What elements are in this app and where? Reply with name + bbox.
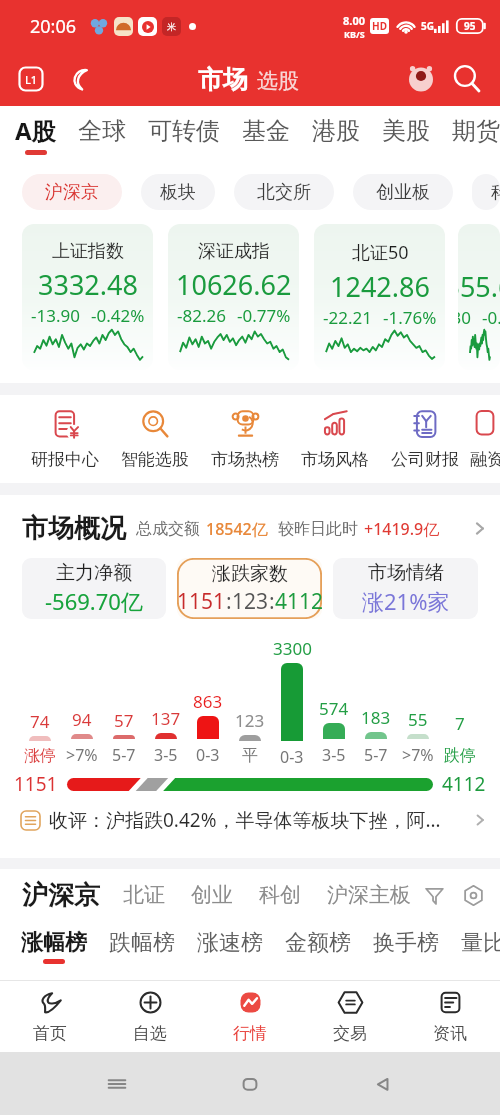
button[interactable]: 公司财报	[380, 408, 470, 470]
staticText: :	[226, 587, 232, 616]
staticText: 574	[319, 697, 349, 720]
button[interactable]: 创业板	[353, 174, 453, 210]
button[interactable]: 跌幅榜	[98, 921, 186, 973]
button[interactable]: 港股	[301, 106, 371, 163]
staticText: 可转债	[148, 116, 220, 146]
button[interactable]: 换手榜	[362, 921, 450, 973]
staticText: 183	[361, 706, 391, 729]
staticText: 港股	[312, 116, 360, 146]
staticText: 18542亿	[206, 518, 268, 540]
button[interactable]: Filter	[424, 885, 445, 906]
button[interactable]: 主力净额	[22, 558, 166, 619]
button[interactable]: 深证成指	[168, 224, 299, 370]
button[interactable]: 市场情绪	[333, 558, 478, 619]
staticText: 基金	[242, 116, 290, 146]
staticText: 863	[193, 690, 223, 713]
button[interactable]: 期货	[441, 106, 500, 163]
button[interactable]: 资讯	[400, 981, 500, 1052]
button[interactable]: 板块	[141, 174, 215, 210]
button[interactable]: 首页	[0, 981, 100, 1052]
staticText: 金额榜	[285, 929, 351, 957]
button[interactable]: 全球	[67, 106, 137, 163]
staticText: 沪深京	[45, 181, 99, 204]
staticText: :	[269, 587, 275, 616]
staticText: KB/S	[344, 28, 365, 40]
button[interactable]: 收评：沪指跌0.42%，半导体等板块下挫，阿…	[20, 803, 488, 837]
staticText: 3-5	[322, 744, 346, 766]
button[interactable]: 研报中心	[20, 408, 110, 470]
button[interactable]: Recent apps	[101, 1068, 133, 1100]
staticText: 研报中心	[31, 449, 99, 470]
button[interactable]: 融资	[470, 408, 500, 470]
staticText: 1151	[177, 587, 226, 616]
staticText: 较昨日此时	[278, 519, 358, 539]
staticText: -22.21	[323, 306, 372, 329]
staticText: 123	[232, 587, 269, 616]
button[interactable]: 涨跌家数	[177, 558, 322, 619]
button[interactable]: 基金	[231, 106, 301, 163]
staticText: 资讯	[433, 1023, 467, 1044]
staticText: 涨21%家	[362, 586, 450, 616]
button[interactable]: 北交所	[234, 174, 334, 210]
button[interactable]: Home	[234, 1068, 266, 1100]
staticText: 跌停	[444, 746, 476, 766]
button[interactable]: 2555.68	[458, 224, 500, 370]
button[interactable]: Alerts	[406, 64, 436, 94]
staticText: +1419.9亿	[364, 518, 440, 540]
button[interactable]: 量比榜	[450, 921, 500, 973]
button[interactable]: 市场风格	[290, 408, 380, 470]
staticText: 北交所	[257, 181, 311, 204]
button[interactable]: 行情	[200, 981, 300, 1052]
staticText: -15.30	[458, 306, 471, 329]
staticText: 20:06	[30, 14, 77, 39]
staticText: 2555.68	[458, 268, 500, 305]
staticText: 平	[242, 746, 258, 766]
button[interactable]: Settings	[463, 885, 484, 906]
button[interactable]: 美股	[371, 106, 441, 163]
staticText: -1.76%	[383, 306, 437, 329]
staticText: 市场情绪	[368, 561, 444, 585]
button[interactable]: 智能选股	[110, 408, 200, 470]
staticText: 涨跌家数	[212, 562, 288, 586]
button[interactable]: Night mode	[66, 66, 92, 92]
staticText: 北证50	[352, 240, 409, 265]
staticText: 总成交额	[136, 519, 200, 539]
button[interactable]: A股	[4, 106, 67, 163]
staticText: 市场热榜	[211, 449, 279, 470]
button[interactable]: Back	[367, 1068, 399, 1100]
button[interactable]: Search	[452, 64, 482, 94]
staticText: 沪深主板	[327, 882, 395, 908]
staticText: -82.26	[177, 304, 226, 327]
staticText: 板块	[160, 181, 196, 204]
staticText: 美股	[382, 116, 430, 146]
staticText: -569.70亿	[45, 586, 143, 616]
staticText: >7%	[66, 744, 98, 766]
button[interactable]: Level 1 quote	[18, 66, 44, 92]
button[interactable]: 科	[472, 174, 500, 210]
button[interactable]: 自选	[100, 981, 200, 1052]
staticText: 涨停	[24, 746, 56, 766]
button[interactable]: 创业	[191, 882, 233, 908]
staticText: 8.00	[343, 13, 365, 28]
button[interactable]: 北证50	[314, 224, 445, 370]
staticText: 交易	[333, 1023, 367, 1044]
button[interactable]: 上证指数	[22, 224, 153, 370]
button[interactable]: 沪深主板	[327, 882, 395, 908]
button[interactable]: 科创	[259, 882, 301, 908]
staticText: 137	[151, 707, 181, 730]
button[interactable]: 涨幅榜	[10, 921, 98, 973]
staticText: 创业板	[376, 181, 430, 204]
staticText: 5-7	[112, 744, 136, 766]
button[interactable]: 沪深京	[22, 174, 122, 210]
staticText: 95	[464, 19, 476, 33]
button[interactable]: 北证	[123, 882, 165, 908]
staticText: 公司财报	[391, 449, 459, 470]
button[interactable]: 金额榜	[274, 921, 362, 973]
button[interactable]: 涨速榜	[186, 921, 274, 973]
button[interactable]: 交易	[300, 981, 400, 1052]
button[interactable]: 可转债	[137, 106, 231, 163]
button[interactable]: 市场热榜	[200, 408, 290, 470]
staticText: 智能选股	[121, 449, 189, 470]
button[interactable]: 沪深京	[22, 879, 100, 912]
staticText: 4112	[275, 587, 322, 616]
